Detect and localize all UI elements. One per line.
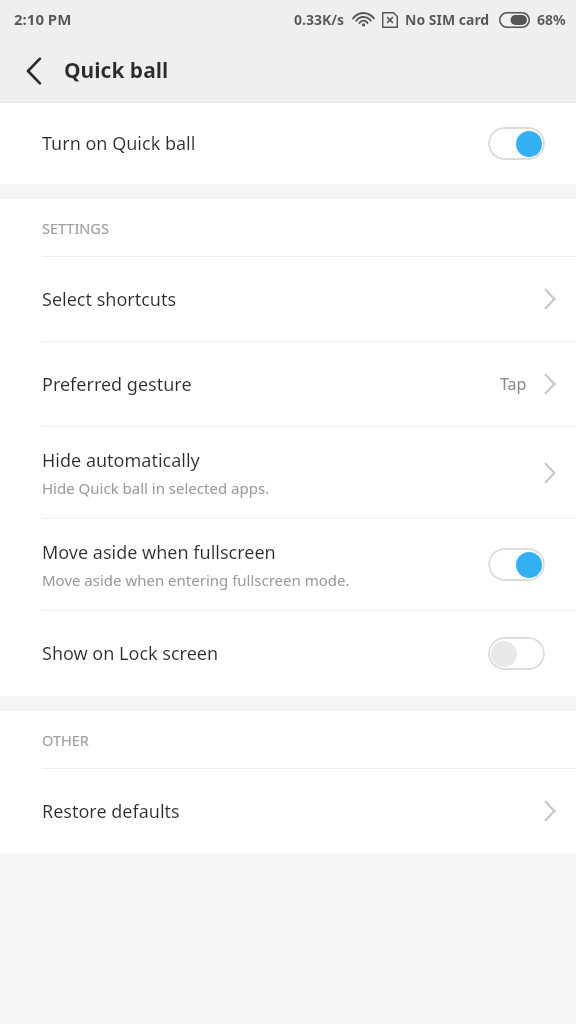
staticText: No SIM card (405, 10, 490, 29)
button[interactable]: Turn on Quick ball (0, 103, 576, 184)
staticText: SETTINGS (42, 218, 109, 238)
staticText: Restore defaults (42, 799, 180, 824)
staticText: Hide Quick ball in selected apps. (42, 478, 270, 498)
button[interactable]: Preferred gesture (0, 342, 576, 426)
button[interactable]: Move aside when fullscreen (0, 519, 576, 610)
staticText: Select shortcuts (42, 287, 177, 312)
button[interactable]: Back (8, 45, 60, 97)
staticText: Tap (500, 373, 527, 395)
button[interactable]: Restore defaults (0, 769, 576, 853)
staticText: OTHER (42, 730, 89, 750)
staticText: Move aside when entering fullscreen mode… (42, 570, 350, 590)
staticText: Show on Lock screen (42, 641, 219, 666)
staticText: Quick ball (64, 56, 169, 85)
staticText: Preferred gesture (42, 372, 192, 397)
staticText: Move aside when fullscreen (42, 540, 276, 565)
staticText: Hide automatically (42, 448, 200, 473)
staticText: 0.33K/s (294, 10, 345, 29)
button[interactable]: Off (488, 637, 545, 670)
staticText: 2:10 PM (14, 9, 72, 29)
button[interactable]: Select shortcuts (0, 257, 576, 341)
button[interactable]: On (488, 548, 545, 581)
button[interactable]: Show on Lock screen (0, 611, 576, 696)
button[interactable]: On (488, 127, 545, 160)
staticText: 68% (537, 10, 566, 29)
staticText: Turn on Quick ball (42, 131, 196, 156)
button[interactable]: Hide automatically (0, 427, 576, 518)
